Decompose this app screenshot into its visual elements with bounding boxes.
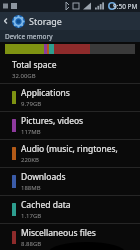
staticText: 1.17GB xyxy=(21,212,42,220)
staticText: Miscellaneous files xyxy=(21,227,96,239)
staticText: Applications xyxy=(21,87,70,99)
button[interactable]: Cached data xyxy=(0,196,140,223)
button[interactable]: Pictures, videos xyxy=(0,112,140,139)
staticText: 220KB xyxy=(21,156,39,164)
button[interactable]: Downloads xyxy=(0,168,140,195)
staticText: Device memory xyxy=(5,32,53,41)
staticText: Storage xyxy=(29,15,62,27)
staticText: Downloads xyxy=(21,171,66,183)
staticText: 188MB xyxy=(21,184,41,192)
staticText: 9.79GB xyxy=(21,100,42,108)
button[interactable]: Total space xyxy=(0,56,140,83)
staticText: 8.88GB xyxy=(21,240,42,248)
button[interactable]: Applications xyxy=(0,84,140,111)
staticText: Audio (music, ringtones, podcasts.. xyxy=(21,143,140,155)
button[interactable]: Audio (music, ringtones, podcasts.. xyxy=(0,140,140,167)
staticText: Pictures, videos xyxy=(21,115,84,127)
staticText: Total space xyxy=(12,59,57,71)
button[interactable]: Back xyxy=(0,12,12,30)
staticText: 9:50 PM xyxy=(113,2,138,11)
staticText: 32.00GB xyxy=(12,72,36,80)
staticText: Cached data xyxy=(21,199,71,211)
staticText: 117MB xyxy=(21,128,41,136)
button[interactable]: Miscellaneous files xyxy=(0,224,140,250)
